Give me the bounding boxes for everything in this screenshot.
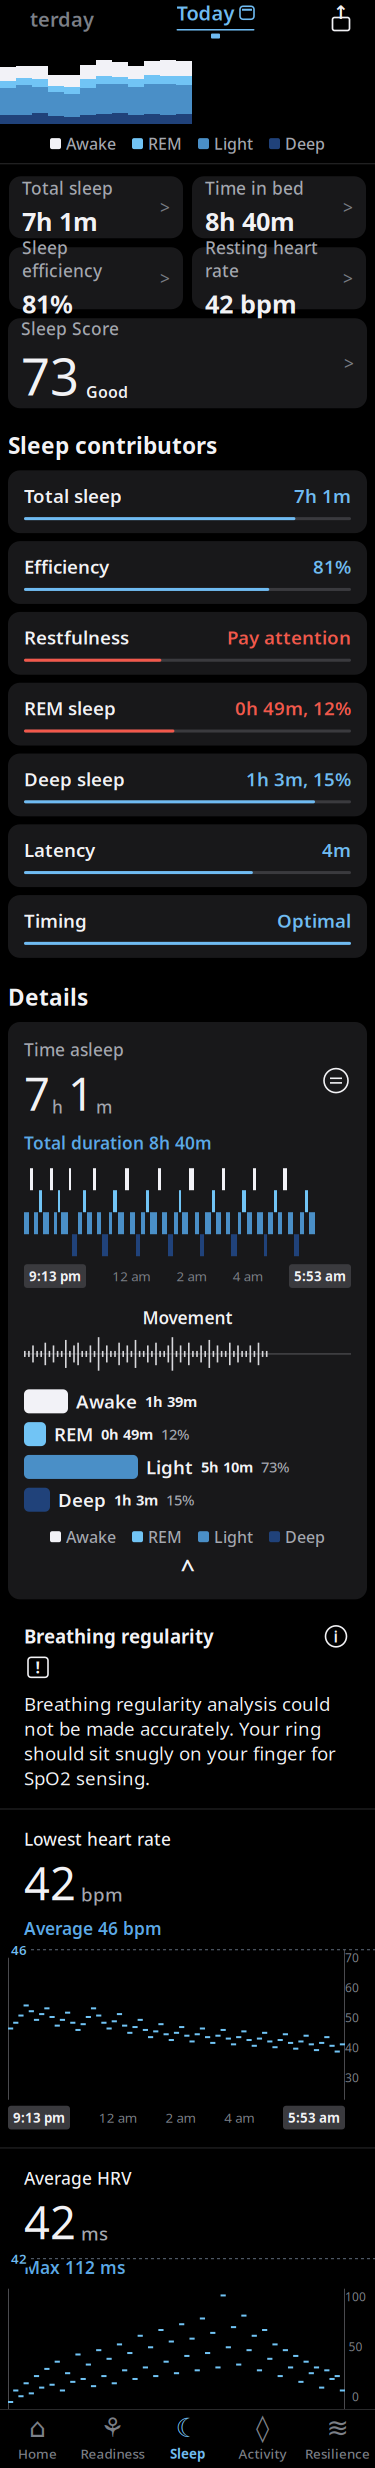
- staticText: Max 112 ms: [24, 2256, 126, 2279]
- staticText: >: [160, 267, 170, 290]
- staticText: Total duration 8h 40m: [24, 1131, 212, 1154]
- staticText: 12 am: [99, 2109, 137, 2126]
- staticText: Optimal: [277, 908, 351, 933]
- staticText: 12 am: [99, 2451, 137, 2468]
- staticText: 42: [11, 2250, 27, 2267]
- staticText: ↑: [333, 2, 349, 23]
- staticText: 5:53 am: [288, 2109, 340, 2126]
- staticText: 2 am: [165, 2451, 195, 2468]
- staticText: 42: [24, 2191, 76, 2252]
- staticText: 4m: [322, 837, 351, 862]
- button[interactable]: Time in bed: [192, 176, 366, 238]
- staticText: Breathing regularity analysis could not …: [24, 1691, 336, 1790]
- button[interactable]: ⌂: [0, 2413, 75, 2465]
- staticText: Details: [8, 982, 88, 1012]
- button[interactable]: Share: [319, 0, 363, 38]
- button[interactable]: Information: [321, 1621, 351, 1651]
- staticText: 1h 3m, 15%: [246, 766, 351, 791]
- staticText: ⌂: [29, 2412, 46, 2443]
- staticText: Light: [214, 1526, 253, 1547]
- staticText: terday: [30, 6, 94, 32]
- staticText: Time in bed: [205, 176, 304, 199]
- staticText: REM: [148, 1526, 182, 1547]
- staticText: m: [96, 1095, 112, 1118]
- button[interactable]: ☾: [150, 2413, 225, 2465]
- staticText: ms: [81, 2221, 108, 2246]
- staticText: >: [343, 196, 353, 219]
- staticText: 15%: [166, 1490, 194, 1509]
- staticText: Light: [146, 1454, 193, 1479]
- staticText: Activity: [238, 2445, 286, 2462]
- staticText: >: [344, 352, 354, 375]
- staticText: 9:13 pm: [13, 2451, 65, 2468]
- staticText: 1h 39m: [145, 1392, 197, 1411]
- staticText: ◊: [256, 2412, 269, 2443]
- staticText: Readiness: [80, 2445, 144, 2462]
- button[interactable]: Collapse: [157, 1553, 217, 1583]
- staticText: 8h 40m: [205, 204, 295, 238]
- staticText: Deep: [58, 1487, 106, 1512]
- button[interactable]: Restfulness: [8, 612, 367, 675]
- button[interactable]: ≋: [300, 2413, 375, 2465]
- staticText: 0: [352, 2389, 359, 2405]
- staticText: Total sleep: [22, 176, 113, 199]
- staticText: Today: [176, 0, 234, 26]
- staticText: 73: [21, 342, 79, 409]
- button[interactable]: terday: [12, 2, 112, 36]
- staticText: Resting heart rate: [205, 236, 318, 282]
- button[interactable]: Chart options: [321, 1066, 351, 1096]
- button[interactable]: Latency: [8, 824, 367, 887]
- staticText: ^: [180, 1551, 194, 1585]
- staticText: Light: [214, 133, 253, 154]
- staticText: 5:53 am: [288, 2451, 340, 2468]
- staticText: 30: [345, 2070, 359, 2086]
- staticText: 70: [345, 1950, 359, 1966]
- staticText: 81%: [22, 287, 73, 320]
- staticText: Breathing regularity: [24, 1624, 214, 1649]
- staticText: 60: [345, 1980, 359, 1996]
- staticText: Sleep: [170, 2445, 205, 2462]
- button[interactable]: Sleep efficiency: [9, 247, 183, 309]
- button[interactable]: ⚘: [75, 2413, 150, 2465]
- staticText: 2 am: [165, 2109, 195, 2126]
- staticText: 7h 1m: [22, 204, 98, 238]
- staticText: 0h 49m, 12%: [235, 696, 351, 720]
- staticText: 9:13 pm: [29, 1267, 81, 1285]
- staticText: i: [333, 1626, 338, 1647]
- staticText: Efficiency: [24, 554, 109, 579]
- staticText: Deep: [285, 133, 325, 154]
- staticText: Home: [18, 2445, 57, 2462]
- staticText: REM sleep: [24, 696, 116, 720]
- staticText: 42 bpm: [205, 287, 297, 320]
- button[interactable]: Today: [160, 0, 270, 39]
- staticText: Average HRV: [24, 2166, 132, 2189]
- button[interactable]: Resting heart rate: [192, 247, 366, 309]
- button[interactable]: Total sleep: [8, 470, 367, 533]
- button[interactable]: Efficiency: [8, 541, 367, 604]
- staticText: Timing: [24, 908, 87, 933]
- staticText: >: [160, 196, 170, 219]
- staticText: Sleep Score: [21, 317, 119, 340]
- staticText: Deep: [285, 1526, 325, 1547]
- staticText: Movement: [142, 1306, 232, 1329]
- staticText: h: [52, 1095, 63, 1118]
- staticText: 4 am: [233, 1267, 263, 1285]
- staticText: 46: [11, 1941, 27, 1959]
- button[interactable]: Total sleep: [9, 176, 183, 238]
- staticText: ⚘: [100, 2412, 124, 2443]
- staticText: >: [343, 267, 353, 290]
- button[interactable]: Deep sleep: [8, 753, 367, 816]
- staticText: 12 am: [112, 1267, 150, 1285]
- staticText: Awake: [66, 1526, 116, 1547]
- staticText: 4 am: [224, 2109, 254, 2126]
- button[interactable]: REM sleep: [8, 683, 367, 745]
- button[interactable]: ◊: [225, 2413, 300, 2465]
- staticText: bpm: [81, 1882, 123, 1907]
- staticText: 0h 49m: [101, 1424, 153, 1444]
- button[interactable]: Sleep Score: [8, 318, 367, 408]
- staticText: !: [35, 1657, 40, 1678]
- button[interactable]: Timing: [8, 895, 367, 958]
- staticText: Deep sleep: [24, 766, 125, 791]
- staticText: 42: [24, 1852, 76, 1913]
- staticText: Sleep efficiency: [22, 236, 102, 282]
